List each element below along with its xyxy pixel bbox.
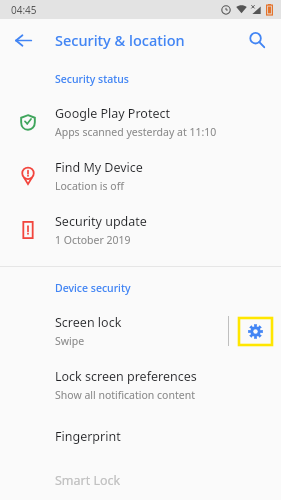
staticText: Device security	[55, 281, 131, 295]
staticText: Find My Device	[55, 159, 143, 176]
button[interactable]: Screen lock settings	[229, 304, 281, 358]
staticText: Apps scanned yesterday at 11:10	[55, 125, 217, 139]
staticText: Swipe	[55, 334, 85, 348]
button[interactable]: Google Play Protect	[0, 95, 281, 149]
staticText: Security update	[55, 213, 147, 230]
button[interactable]: Search	[239, 22, 275, 58]
button[interactable]: Navigate up	[5, 22, 41, 58]
button[interactable]: Security update	[0, 203, 281, 257]
button[interactable]: Find My Device	[0, 149, 281, 203]
button[interactable]: Lock screen preferences	[0, 358, 281, 412]
staticText: Fingerprint	[55, 428, 121, 445]
staticText: Screen lock	[55, 314, 122, 331]
button[interactable]: Smart Lock	[0, 460, 281, 500]
staticText: Location is off	[55, 179, 124, 193]
staticText: 1 October 2019	[55, 233, 131, 247]
staticText: 04:45	[11, 3, 37, 17]
staticText: Smart Lock	[55, 472, 121, 489]
button[interactable]: Screen lock	[0, 304, 228, 358]
staticText: Lock screen preferences	[55, 368, 197, 385]
staticText: Security status	[55, 72, 129, 86]
staticText: Show all notification content	[55, 388, 195, 402]
staticText: Security & location	[55, 30, 185, 50]
button[interactable]: Fingerprint	[0, 412, 281, 460]
staticText: Google Play Protect	[55, 105, 170, 122]
